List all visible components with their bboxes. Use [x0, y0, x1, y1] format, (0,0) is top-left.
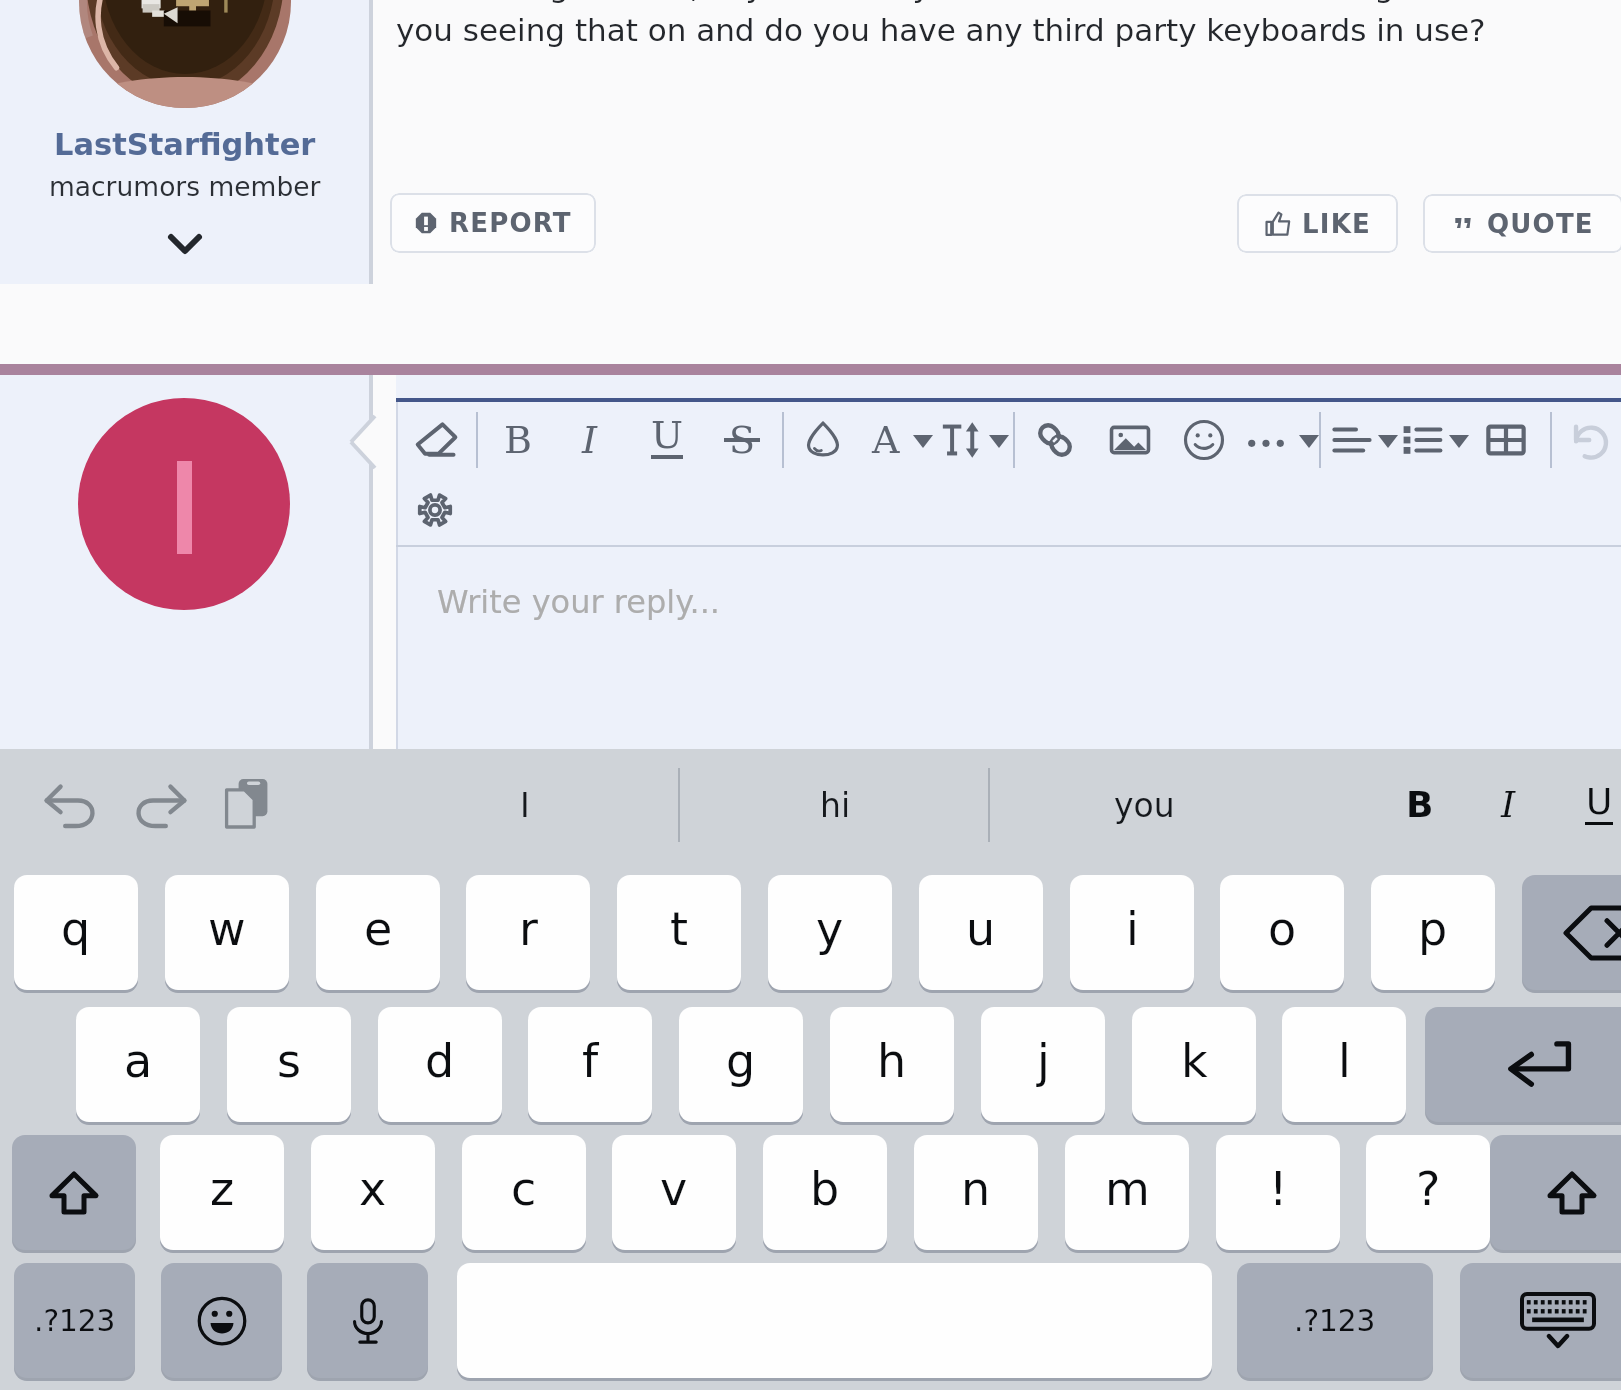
button[interactable]: z [160, 1135, 284, 1250]
button[interactable]: Like [1237, 194, 1398, 253]
button[interactable]: Erase formatting [413, 416, 461, 464]
staticText: z [210, 1162, 235, 1216]
button[interactable]: Quote [1423, 194, 1621, 253]
button[interactable]: t [617, 875, 741, 990]
button[interactable]: k [1132, 1007, 1256, 1122]
staticText: B [504, 418, 532, 462]
button[interactable]: List [1398, 416, 1446, 464]
button[interactable]: s [227, 1007, 351, 1122]
button[interactable]: Text colour [799, 416, 847, 464]
staticText: ! [1269, 1162, 1288, 1216]
staticText: h [877, 1034, 907, 1088]
button[interactable]: Bold [494, 416, 542, 464]
button[interactable]: v [612, 1135, 736, 1250]
button[interactable]: Shift [12, 1135, 136, 1250]
button[interactable]: x [311, 1135, 435, 1250]
staticText: LIKE [1302, 209, 1371, 239]
staticText: a [124, 1034, 153, 1088]
button[interactable]: Italic [1480, 767, 1536, 843]
staticText: i [1126, 902, 1139, 956]
button[interactable]: Insert link [1031, 416, 1079, 464]
button[interactable]: f [528, 1007, 652, 1122]
button[interactable]: p [1371, 875, 1495, 990]
button[interactable]: c [462, 1135, 586, 1250]
button[interactable]: I [405, 749, 645, 860]
staticText: S [729, 418, 756, 462]
button[interactable]: Hide keyboard [1460, 1263, 1621, 1378]
button[interactable]: Bold [1392, 767, 1448, 843]
staticText: hi [820, 786, 851, 824]
button[interactable]: a [76, 1007, 200, 1122]
button[interactable]: hi [715, 749, 955, 860]
staticText: w [208, 902, 246, 956]
button[interactable]: Insert emoji [1180, 416, 1228, 464]
button[interactable]: d [378, 1007, 502, 1122]
staticText: QUOTE [1487, 209, 1594, 239]
button[interactable]: Symbols [1237, 1263, 1433, 1378]
staticText: REPORT [449, 208, 572, 238]
button[interactable]: Redo [131, 775, 189, 833]
button[interactable]: Strikethrough [718, 416, 766, 464]
staticText: ? [1416, 1162, 1441, 1216]
button[interactable]: b [763, 1135, 887, 1250]
button[interactable]: h [830, 1007, 954, 1122]
staticText: .?123 [1294, 1304, 1376, 1338]
button[interactable]: you [1024, 749, 1264, 860]
button[interactable]: More options [1242, 416, 1290, 464]
button[interactable]: Your avatar [78, 398, 290, 610]
button[interactable]: Clipboard [217, 773, 277, 833]
staticText: Write your reply... [437, 583, 721, 620]
button[interactable]: Undo [42, 775, 100, 833]
button[interactable]: Insert table [1482, 416, 1530, 464]
staticText: .?123 [34, 1304, 116, 1338]
staticText: k [1181, 1034, 1208, 1088]
button[interactable]: n [914, 1135, 1038, 1250]
button[interactable]: Italic [566, 416, 614, 464]
button[interactable]: Emoji [161, 1263, 282, 1378]
button[interactable]: o [1220, 875, 1344, 990]
button[interactable]: q [14, 875, 138, 990]
button[interactable]: Insert image [1106, 416, 1154, 464]
button[interactable]: e [316, 875, 440, 990]
button[interactable]: Font [862, 416, 910, 464]
staticText: U [651, 413, 684, 457]
button[interactable]: Backspace [1522, 875, 1621, 990]
staticText: LastStarfighter [54, 127, 316, 163]
button[interactable]: ! [1216, 1135, 1340, 1250]
button[interactable]: Enter [1425, 1007, 1621, 1122]
staticText: b [810, 1162, 840, 1216]
staticText: f [582, 1034, 599, 1088]
button[interactable]: Underline [643, 416, 691, 464]
staticText: o [1268, 902, 1297, 956]
button[interactable]: Expand user info [168, 233, 202, 255]
button[interactable] [0, 0, 369, 284]
button[interactable]: Symbols [14, 1263, 135, 1378]
button[interactable]: g [679, 1007, 803, 1122]
button[interactable]: Write your reply [396, 547, 1621, 749]
button[interactable]: Underline [1571, 767, 1621, 843]
staticText: e [364, 902, 393, 956]
button[interactable]: j [981, 1007, 1105, 1122]
button[interactable]: w [165, 875, 289, 990]
button[interactable]: Voice input [307, 1263, 428, 1378]
button[interactable]: ? [1366, 1135, 1490, 1250]
button[interactable]: Undo [1567, 416, 1615, 464]
button[interactable]: u [919, 875, 1043, 990]
button[interactable]: r [466, 875, 590, 990]
button[interactable]: l [1282, 1007, 1406, 1122]
button[interactable]: Avatar [79, 0, 291, 108]
button[interactable]: Font size [939, 416, 987, 464]
button[interactable]: i [1070, 875, 1194, 990]
button[interactable]: y [768, 875, 892, 990]
button[interactable]: Shift [1490, 1135, 1621, 1250]
button[interactable]: Report [390, 193, 596, 253]
button[interactable]: Text align [1328, 416, 1376, 464]
staticText: v [660, 1162, 688, 1216]
button[interactable]: Editor settings [413, 488, 457, 532]
staticText: B [1406, 784, 1434, 826]
button[interactable]: m [1065, 1135, 1189, 1250]
staticText: l [1338, 1034, 1351, 1088]
staticText: p [1418, 902, 1448, 956]
staticText: you [1114, 786, 1175, 824]
